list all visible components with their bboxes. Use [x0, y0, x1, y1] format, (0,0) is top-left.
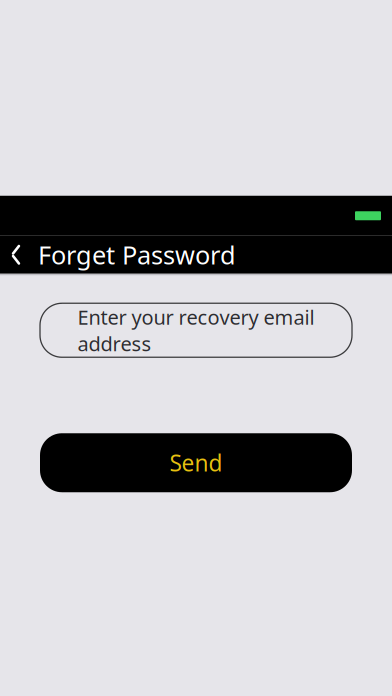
- staticText: Enter your recovery email address: [77, 304, 314, 357]
- button[interactable]: Back: [0, 236, 30, 273]
- button[interactable]: Enter your recovery email address: [40, 303, 352, 357]
- staticText: Forget Password: [38, 238, 236, 271]
- button[interactable]: Send: [40, 433, 352, 492]
- staticText: Send: [169, 448, 222, 478]
